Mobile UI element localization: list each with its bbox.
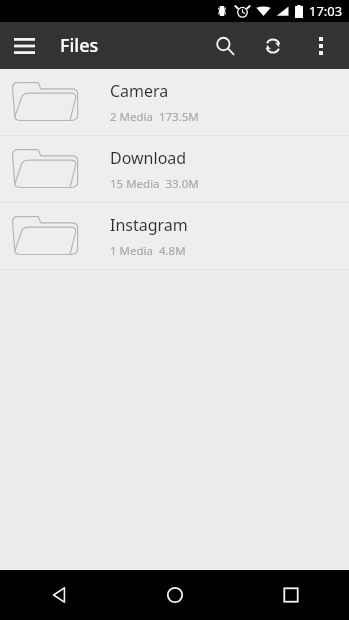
- button[interactable]: Home: [117, 570, 233, 620]
- button[interactable]: Instagram: [0, 203, 349, 269]
- button[interactable]: Back: [0, 570, 117, 620]
- staticText: 2 Media 173.5M: [110, 109, 199, 125]
- staticText: Camera: [110, 80, 169, 102]
- staticText: 17:03: [309, 2, 343, 20]
- staticText: Instagram: [110, 214, 188, 236]
- button[interactable]: Camera: [0, 69, 349, 135]
- button[interactable]: Recent apps: [233, 570, 349, 620]
- button[interactable]: Refresh: [249, 22, 297, 69]
- button[interactable]: Download: [0, 136, 349, 202]
- staticText: Files: [60, 33, 99, 58]
- button[interactable]: More options: [297, 22, 345, 69]
- button[interactable]: Open navigation drawer: [0, 22, 48, 69]
- staticText: Download: [110, 147, 187, 169]
- staticText: 1 Media 4.8M: [110, 243, 186, 259]
- staticText: 15 Media 33.0M: [110, 176, 199, 192]
- button[interactable]: Search: [201, 22, 249, 69]
